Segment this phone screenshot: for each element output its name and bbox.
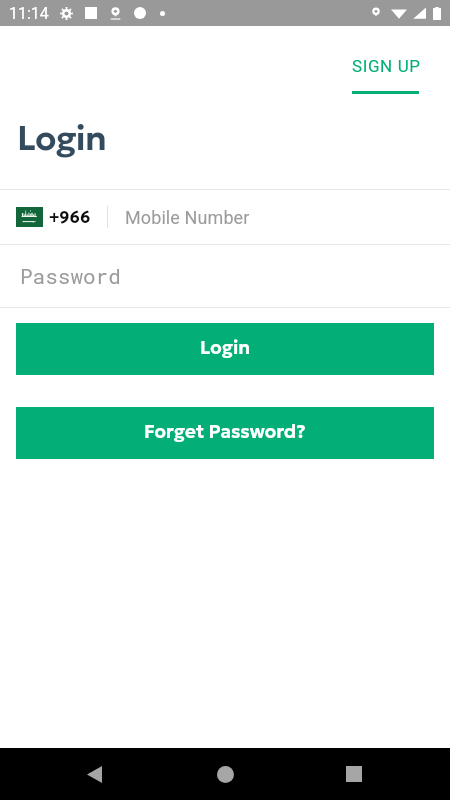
staticText: Forget Password? bbox=[144, 420, 306, 443]
staticText: 11:14 bbox=[9, 4, 49, 23]
button[interactable]: Forget Password? bbox=[16, 407, 434, 459]
staticText: Password bbox=[20, 262, 121, 290]
button[interactable]: Recent apps bbox=[330, 750, 378, 798]
button[interactable]: Password bbox=[0, 245, 450, 307]
button[interactable]: Home bbox=[201, 750, 249, 798]
staticText: Login bbox=[17, 117, 107, 160]
button[interactable]: Back bbox=[70, 750, 118, 798]
button[interactable]: Login bbox=[16, 323, 434, 375]
staticText: SIGN UP bbox=[352, 56, 421, 76]
staticText: Mobile Number bbox=[125, 207, 250, 228]
button[interactable]: SIGN UP bbox=[352, 56, 421, 94]
staticText: Login bbox=[200, 336, 251, 359]
staticText: +966 bbox=[49, 207, 91, 227]
button[interactable]: +966 bbox=[0, 190, 450, 244]
